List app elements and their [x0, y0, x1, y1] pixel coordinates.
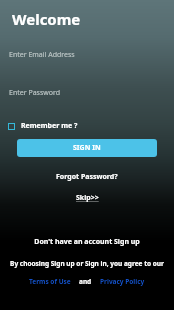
button[interactable]: Forgot Password? — [52, 170, 122, 184]
button[interactable]: Skip>> — [72, 191, 103, 205]
button[interactable]: Enter Password — [0, 80, 174, 106]
staticText: Skip>> — [76, 193, 99, 203]
staticText: Remember me ? — [21, 121, 78, 131]
staticText: SIGN IN — [73, 143, 101, 153]
staticText: Enter Password — [9, 88, 61, 98]
staticText: Welcome — [12, 9, 81, 29]
staticText: Terms of Use — [29, 277, 71, 286]
staticText: and — [79, 277, 92, 286]
button[interactable]: Enter Email Address — [0, 42, 174, 68]
staticText: Privacy Policy — [100, 277, 145, 286]
button[interactable]: Remember me ? — [5, 118, 81, 134]
staticText: Don't have an account Sign up — [34, 237, 140, 247]
staticText: By choosing Sign up or Sign in, you agre… — [0, 259, 174, 268]
button[interactable]: Don't have an account Sign up — [30, 235, 144, 249]
staticText: Forgot Password? — [56, 172, 118, 182]
button[interactable]: SIGN IN — [17, 139, 157, 157]
button[interactable]: Terms of Use — [26, 275, 74, 288]
button[interactable]: Privacy Policy — [97, 275, 148, 288]
staticText: Enter Email Address — [9, 50, 75, 60]
